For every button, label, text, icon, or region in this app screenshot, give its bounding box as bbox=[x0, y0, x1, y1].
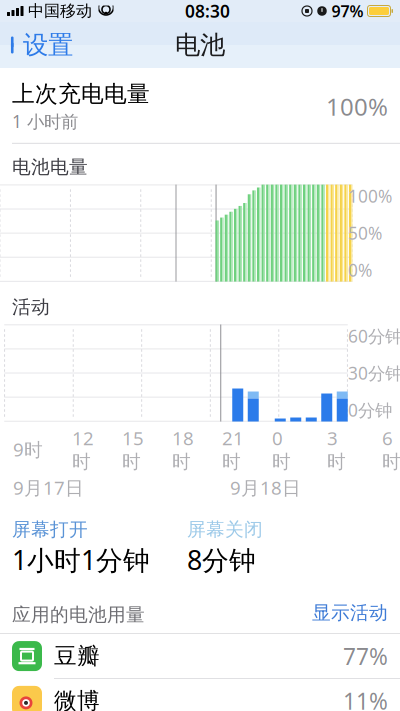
staticText: 8分钟 bbox=[187, 542, 256, 577]
staticText: 上次充电电量 bbox=[12, 80, 150, 108]
staticText: 0% bbox=[348, 259, 372, 282]
staticText: 6时 bbox=[382, 425, 400, 473]
staticText: 电池 bbox=[175, 29, 225, 60]
staticText: 屏幕打开 bbox=[12, 518, 88, 541]
staticText: 电池电量 bbox=[12, 156, 88, 179]
staticText: 0时 bbox=[272, 425, 291, 473]
staticText: 活动 bbox=[12, 296, 50, 318]
staticText: 11% bbox=[343, 686, 388, 711]
staticText: 77% bbox=[343, 641, 388, 671]
staticText: 1 小时前 bbox=[12, 110, 78, 133]
staticText: 97% bbox=[331, 0, 363, 22]
button[interactable]: 设置 bbox=[0, 23, 81, 66]
staticText: 0分钟 bbox=[348, 398, 392, 421]
staticText: 9月17日 bbox=[13, 475, 84, 500]
staticText: 12时 bbox=[72, 425, 94, 473]
button[interactable]: 微博 bbox=[0, 679, 400, 711]
staticText: 30分钟 bbox=[348, 361, 400, 384]
staticText: 18时 bbox=[172, 425, 194, 473]
staticText: 100% bbox=[326, 90, 388, 122]
staticText: 08:30 bbox=[185, 0, 230, 22]
staticText: 9时 bbox=[13, 437, 43, 462]
staticText: 15时 bbox=[122, 425, 144, 473]
staticText: 屏幕关闭 bbox=[187, 518, 263, 541]
staticText: 1小时1分钟 bbox=[12, 542, 150, 577]
button[interactable]: 豆瓣 bbox=[0, 634, 400, 679]
staticText: 中国移动 bbox=[28, 1, 92, 21]
staticText: 21时 bbox=[222, 425, 244, 473]
staticText: 9月18日 bbox=[230, 475, 301, 500]
button[interactable]: 显示活动 bbox=[302, 599, 388, 626]
staticText: 显示活动 bbox=[312, 601, 388, 624]
staticText: 设置 bbox=[23, 29, 73, 60]
staticText: 微博 bbox=[54, 687, 100, 711]
staticText: 3时 bbox=[327, 425, 346, 473]
staticText: 应用的电池用量 bbox=[12, 603, 145, 626]
staticText: 豆瓣 bbox=[54, 642, 100, 670]
staticText: 100% bbox=[348, 185, 392, 208]
staticText: 50% bbox=[348, 222, 382, 245]
staticText: 60分钟 bbox=[348, 324, 400, 347]
